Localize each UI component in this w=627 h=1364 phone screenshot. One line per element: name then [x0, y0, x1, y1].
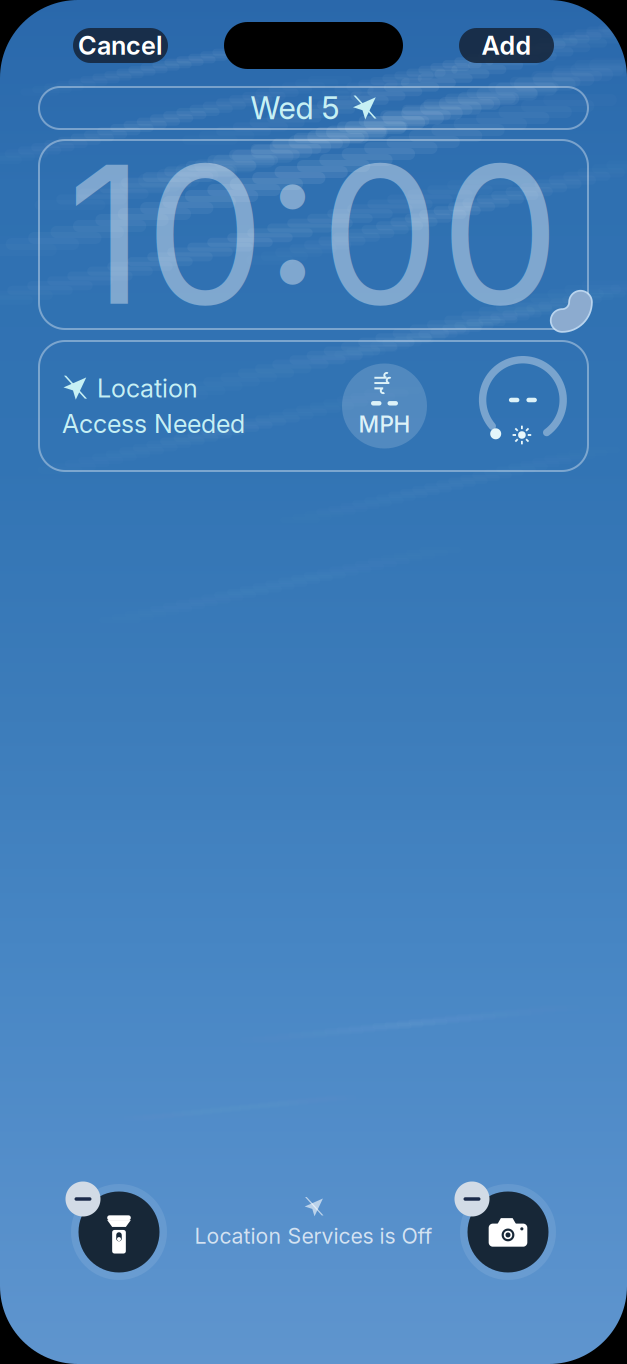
- button[interactable]: 10:00: [39, 140, 588, 329]
- staticText: Wed 5: [250, 89, 339, 126]
- staticText: Add: [481, 30, 531, 61]
- staticText: MPH: [358, 410, 410, 438]
- staticText: Cancel: [78, 30, 163, 61]
- staticText: 10:00: [67, 119, 560, 350]
- button[interactable]: Remove Camera: [458, 1182, 558, 1282]
- staticText: Location Services is Off: [194, 1223, 432, 1249]
- staticText: Location: [97, 373, 198, 403]
- button[interactable]: Wed 5: [39, 87, 588, 129]
- staticText: Access Needed: [62, 408, 245, 439]
- button[interactable]: Add: [459, 28, 554, 63]
- button[interactable]: Remove Flashlight: [69, 1182, 169, 1282]
- button[interactable]: Location: [39, 341, 588, 471]
- button[interactable]: Cancel: [73, 28, 168, 63]
